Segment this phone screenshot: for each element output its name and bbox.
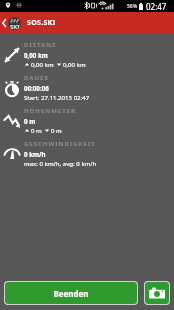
staticText: 0,00 km <box>31 60 54 68</box>
staticText: SKI <box>10 23 20 30</box>
staticText: 0 m <box>31 126 42 134</box>
button[interactable]: Camera <box>145 282 169 304</box>
staticText: 00:00:06 <box>24 84 49 92</box>
staticText: 0,00 km <box>63 60 86 68</box>
staticText: Beenden <box>53 288 89 299</box>
staticText: 0 m <box>51 126 62 134</box>
staticText: SOS.SKI <box>27 18 56 28</box>
button[interactable]: Back <box>0 12 7 34</box>
staticText: HÖHENMETER <box>24 107 76 115</box>
button[interactable]: Beenden <box>5 282 137 304</box>
staticText: 0,00 km <box>24 51 48 59</box>
staticText: DISTANZ <box>24 41 57 49</box>
staticText: GESCHWINDIGKEIT <box>24 140 96 148</box>
staticText: 56% <box>127 3 138 10</box>
staticText: max: 0 km/h, avg: 0 km/h <box>24 159 97 167</box>
staticText: 0 km/h <box>24 150 46 158</box>
staticText: DAUER <box>24 74 50 82</box>
staticText: 0 m <box>24 117 36 125</box>
staticText: Start: 27.11.2015 02:47 <box>24 93 90 101</box>
staticText: 02:47 <box>146 1 167 12</box>
